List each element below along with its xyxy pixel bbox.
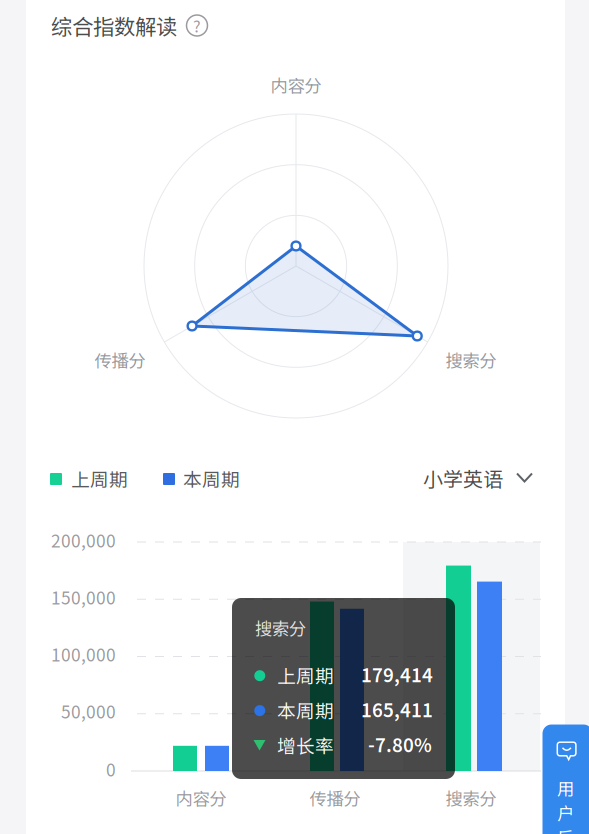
staticText: 本周期 — [277, 697, 334, 724]
staticText: 增长率 — [277, 732, 334, 759]
button[interactable]: 综合指数解读 帮助 — [0, 0, 330, 42]
staticText: 内容分 — [175, 785, 226, 811]
staticText: 179,414 — [361, 661, 433, 688]
staticText: 50,000 — [61, 698, 116, 724]
staticText: 搜索分 — [255, 615, 306, 641]
staticText: 200,000 — [51, 527, 116, 553]
staticText: ? — [193, 14, 201, 37]
staticText: 上周期 — [71, 465, 128, 492]
button[interactable]: 用户反馈 — [542, 724, 589, 834]
staticText: 150,000 — [51, 584, 116, 610]
staticText: 165,411 — [361, 696, 433, 723]
staticText: 户 — [557, 800, 574, 825]
staticText: 上周期 — [277, 662, 334, 689]
staticText: 内容分 — [270, 72, 321, 98]
staticText: 100,000 — [51, 641, 116, 667]
button[interactable]: 小学英语 — [417, 456, 538, 500]
staticText: 本周期 — [183, 465, 240, 492]
staticText: 0 — [106, 756, 116, 782]
staticText: 综合指数解读 — [51, 10, 177, 41]
staticText: 传播分 — [309, 785, 360, 811]
staticText: 搜索分 — [445, 785, 496, 811]
staticText: -7.80% — [368, 731, 432, 758]
staticText: 小学英语 — [423, 463, 503, 492]
staticText: 传播分 — [94, 347, 145, 373]
staticText: 搜索分 — [445, 347, 496, 373]
staticText: 反 — [557, 824, 574, 834]
staticText: 用 — [557, 775, 574, 801]
